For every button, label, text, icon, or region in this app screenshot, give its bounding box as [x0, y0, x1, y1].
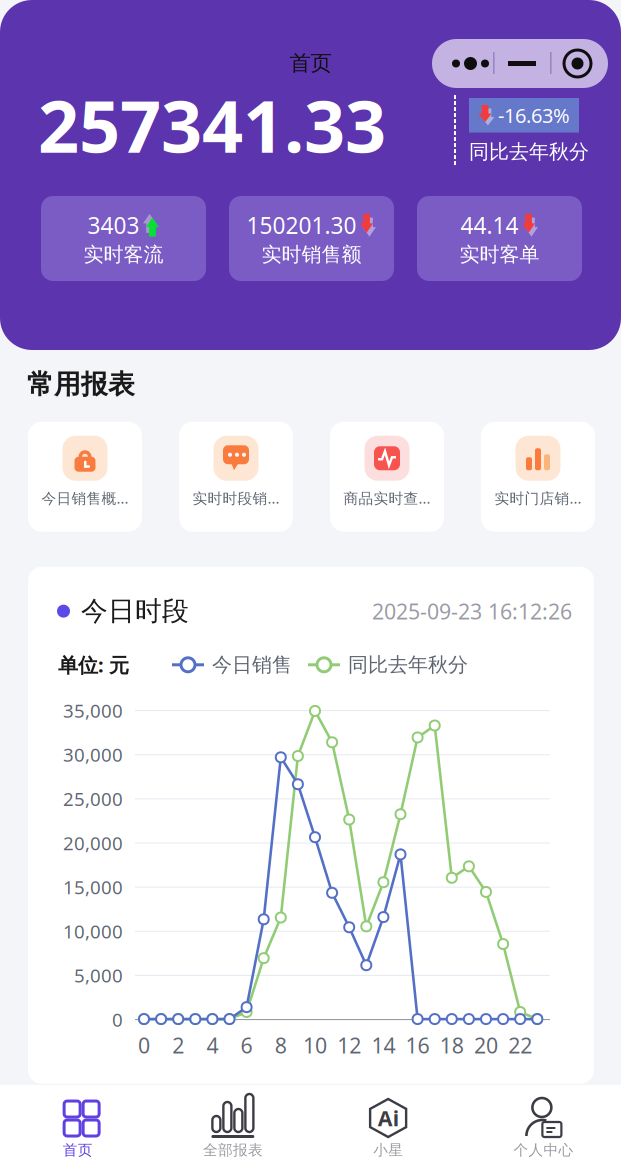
staticText: -16.63%	[498, 102, 570, 129]
staticText: 常用报表	[27, 368, 135, 401]
staticText: 257341.33	[38, 77, 386, 173]
button[interactable]: 首页	[0, 1085, 155, 1169]
staticText: 同比去年秋分	[348, 652, 468, 677]
button[interactable]: 44.14	[417, 196, 582, 281]
button[interactable]: 商品实时查...	[330, 422, 444, 532]
staticText: 10,000	[63, 919, 123, 944]
staticText: 3403	[87, 210, 139, 240]
staticText: 首页	[289, 50, 331, 76]
staticText: 今日销售	[212, 652, 292, 677]
staticText: Ai	[378, 1104, 399, 1132]
staticText: 18	[440, 1031, 464, 1059]
staticText: 150201.30	[246, 210, 356, 240]
staticText: 2	[172, 1031, 184, 1059]
staticText: 0	[138, 1031, 150, 1059]
staticText: 16	[406, 1031, 430, 1059]
staticText: 44.14	[460, 210, 518, 240]
button[interactable]: 3403	[41, 196, 206, 281]
staticText: 35,000	[63, 698, 123, 723]
button[interactable]: Mini program controls	[432, 39, 608, 88]
staticText: 15,000	[63, 875, 123, 899]
staticText: 个人中心	[513, 1141, 573, 1159]
staticText: 20	[474, 1031, 498, 1059]
button[interactable]: 今日销售概...	[28, 422, 142, 532]
staticText: 8	[275, 1031, 287, 1059]
button[interactable]: Ai	[310, 1085, 466, 1169]
staticText: 30,000	[63, 742, 123, 767]
staticText: 首页	[63, 1141, 93, 1159]
button[interactable]: 实时时段销...	[179, 422, 293, 532]
staticText: 实时客流	[83, 242, 163, 267]
staticText: 实时门店销...	[494, 488, 581, 508]
button[interactable]: 实时门店销...	[481, 422, 595, 532]
staticText: 今日销售概...	[41, 488, 128, 508]
staticText: 6	[241, 1031, 253, 1059]
button[interactable]: 全部报表	[155, 1085, 310, 1169]
staticText: 实时销售额	[261, 242, 361, 267]
staticText: 商品实时查...	[343, 488, 430, 508]
staticText: 20,000	[63, 830, 123, 855]
staticText: 22	[508, 1031, 532, 1059]
staticText: 25,000	[63, 786, 123, 811]
staticText: 实时客单	[459, 242, 539, 267]
staticText: 小星	[373, 1141, 403, 1159]
staticText: 同比去年秋分	[469, 140, 589, 164]
staticText: 12	[337, 1031, 361, 1059]
staticText: 0	[112, 1007, 123, 1032]
button[interactable]: 个人中心	[466, 1085, 621, 1169]
staticText: 10	[303, 1031, 327, 1059]
staticText: 单位: 元	[58, 651, 129, 678]
staticText: 全部报表	[203, 1141, 263, 1159]
staticText: 5,000	[74, 963, 123, 988]
staticText: 2025-09-23 16:12:26	[372, 597, 572, 625]
staticText: 14	[371, 1031, 395, 1059]
staticText: 实时时段销...	[192, 488, 279, 508]
button[interactable]: 150201.30	[229, 196, 394, 281]
staticText: 今日时段	[81, 595, 189, 628]
staticText: 4	[206, 1031, 218, 1059]
